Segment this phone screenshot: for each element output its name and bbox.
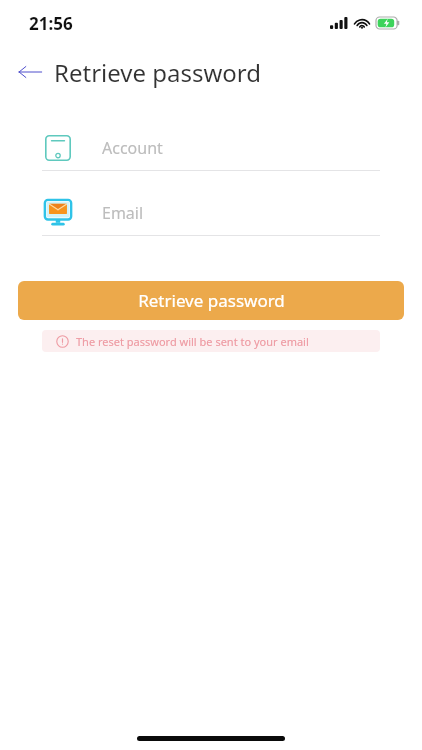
staticText: Retrieve password	[54, 56, 262, 89]
staticText: 21:56	[29, 12, 73, 35]
staticText: The reset password will be sent to your …	[76, 334, 309, 349]
button[interactable]: Retrieve password	[18, 281, 404, 320]
button[interactable]: Account	[0, 126, 422, 171]
staticText: Account	[102, 137, 163, 159]
button[interactable]: Email	[0, 191, 422, 236]
staticText: Retrieve password	[138, 289, 285, 312]
button[interactable]: Back	[8, 50, 52, 94]
staticText: Email	[102, 202, 144, 224]
